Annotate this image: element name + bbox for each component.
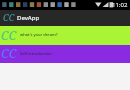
button[interactable]: CC [0, 45, 130, 63]
staticText: what's your dream? [20, 32, 58, 37]
staticText: DevApp [17, 14, 40, 22]
staticText: Self introduction [20, 51, 52, 56]
button[interactable]: CC [0, 10, 130, 26]
button[interactable]: CC [0, 26, 130, 45]
staticText: 11:02 [112, 1, 128, 9]
staticText: CC [1, 45, 17, 61]
staticText: CC [3, 11, 15, 23]
other: Status bar [0, 0, 130, 10]
staticText: CC [1, 27, 17, 43]
